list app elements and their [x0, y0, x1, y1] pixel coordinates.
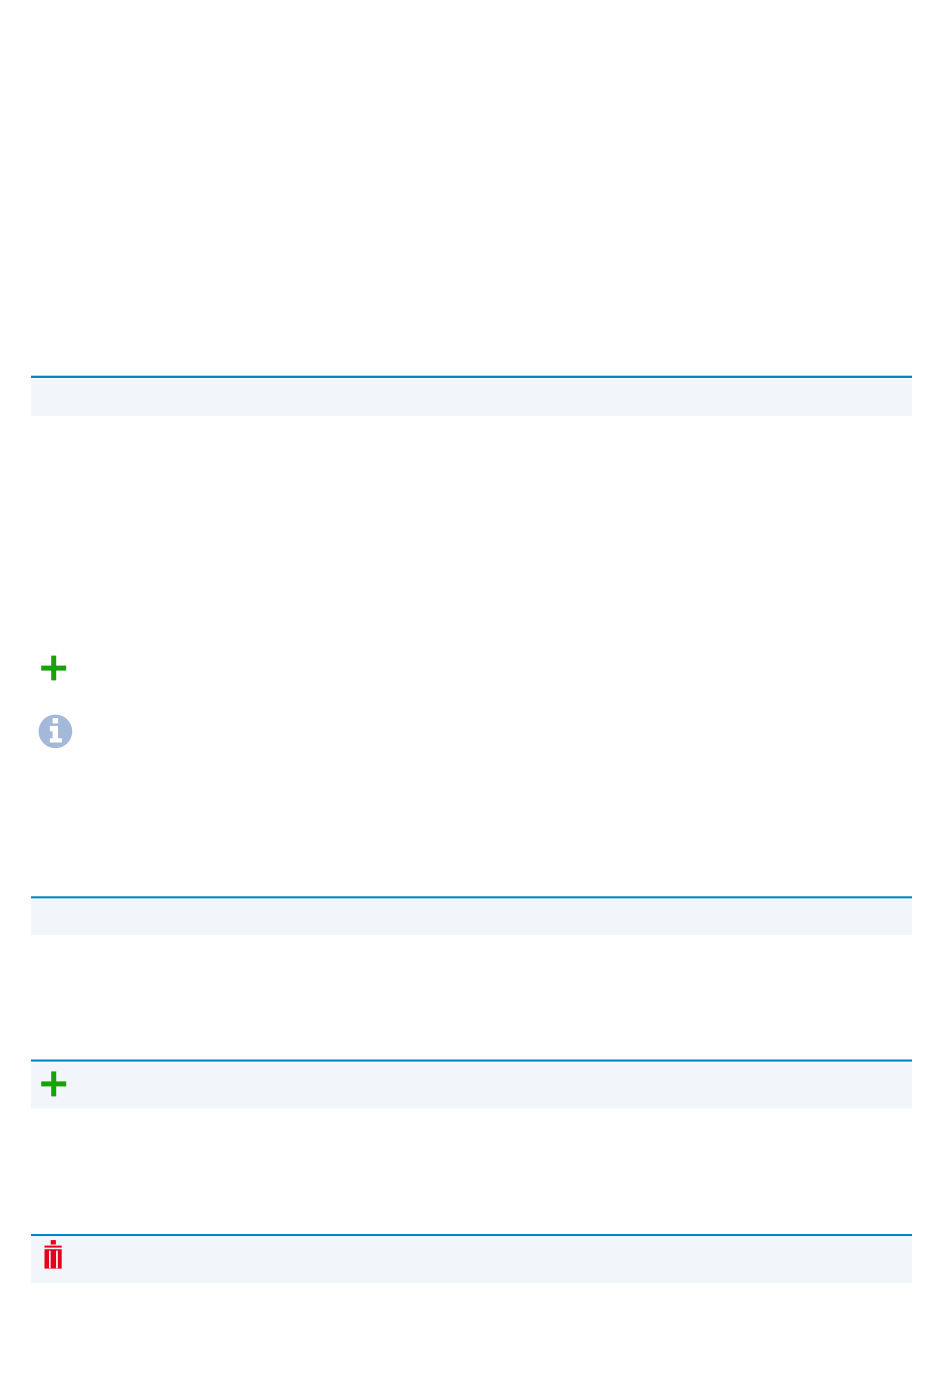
- button[interactable]: Delete: [31, 1234, 912, 1283]
- button[interactable]: Add: [31, 656, 66, 681]
- button[interactable]: Add item: [31, 1059, 912, 1109]
- button[interactable]: Information: [31, 715, 72, 748]
